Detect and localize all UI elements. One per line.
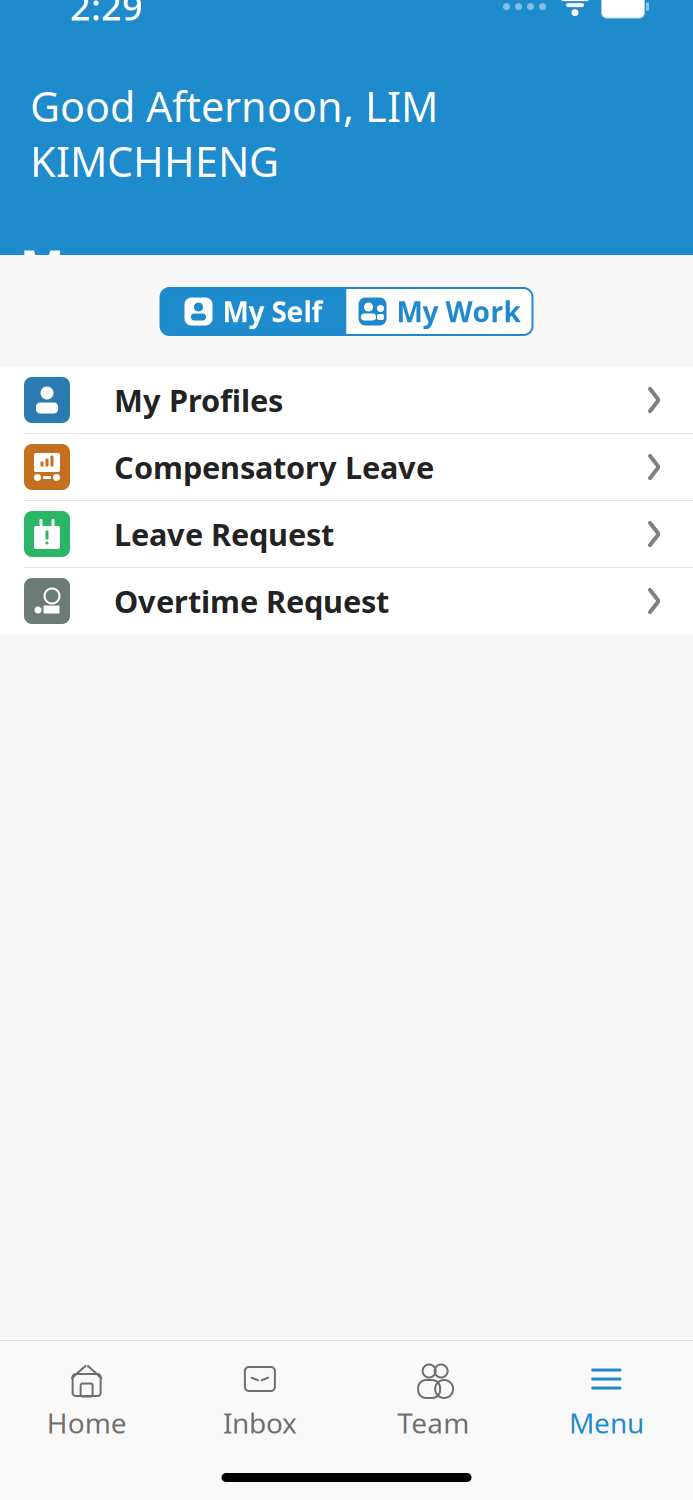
staticText: My Work <box>396 293 520 330</box>
staticText: Leave Request <box>114 514 334 554</box>
button[interactable]: My Self <box>160 288 346 335</box>
staticText: Overtime Request <box>114 581 389 621</box>
staticText: Good Afternoon, LIM KIMCHHENG <box>30 78 438 188</box>
staticText: Home <box>47 1404 127 1441</box>
button[interactable]: Leave Request <box>0 500 693 567</box>
staticText: Inbox <box>223 1404 297 1441</box>
button[interactable]: Team <box>346 1357 520 1445</box>
staticText: Menu <box>20 234 152 296</box>
staticText: Compensatory Leave <box>114 447 434 487</box>
staticText: 2:29 <box>70 0 143 30</box>
button[interactable]: Home <box>0 1357 173 1445</box>
button[interactable]: My Profiles <box>0 367 693 433</box>
button[interactable]: Inbox <box>173 1357 346 1445</box>
staticText: Team <box>397 1404 469 1441</box>
button[interactable]: My Work <box>346 288 532 335</box>
button[interactable]: Overtime Request <box>0 567 693 634</box>
staticText: My Self <box>222 293 322 330</box>
staticText: Menu <box>569 1404 644 1441</box>
button[interactable]: Menu <box>520 1357 693 1445</box>
staticText: My Profiles <box>114 380 283 420</box>
button[interactable]: Compensatory Leave <box>0 433 693 500</box>
